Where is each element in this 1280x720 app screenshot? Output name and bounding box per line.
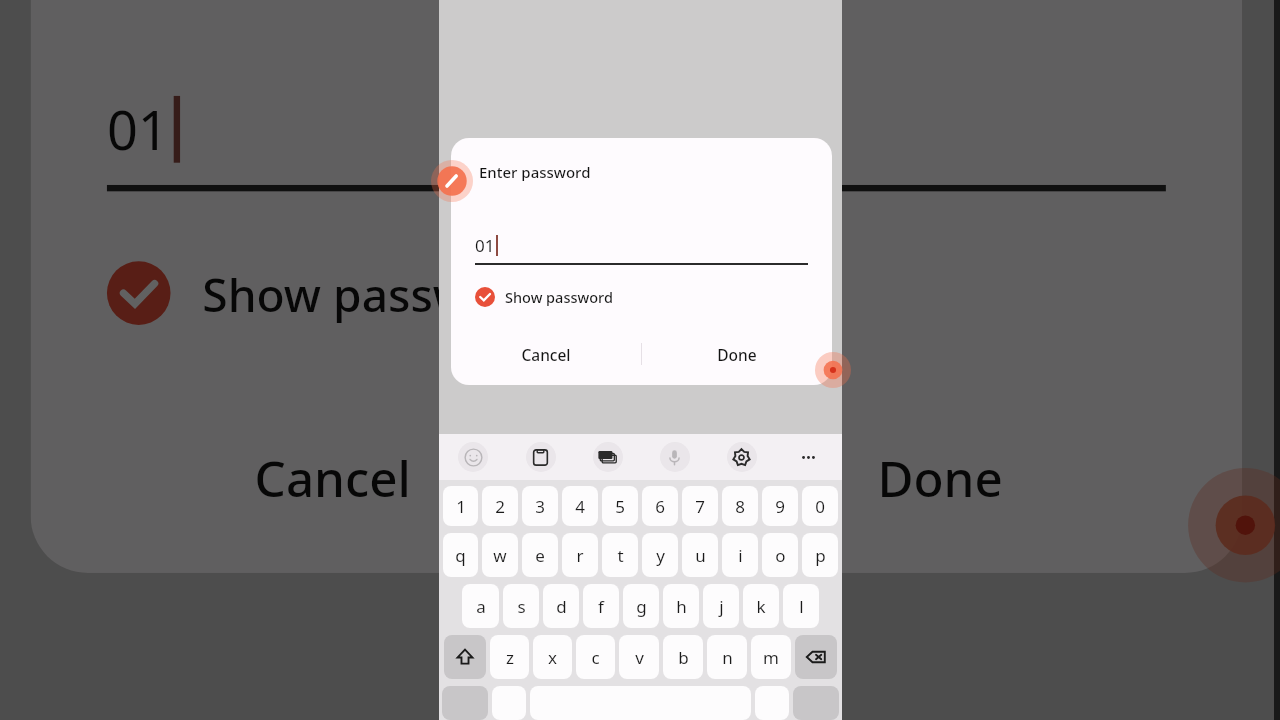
staticText: y xyxy=(656,544,665,567)
button[interactable]: h xyxy=(663,584,699,628)
button[interactable]: j xyxy=(703,584,739,628)
button[interactable]: 6 xyxy=(642,486,678,526)
button[interactable]: 01 xyxy=(107,93,1166,191)
button[interactable]: Comma xyxy=(492,686,526,720)
button[interactable]: Show password xyxy=(107,255,590,331)
button[interactable]: Symbols xyxy=(442,686,488,720)
button[interactable]: Backspace xyxy=(795,635,837,679)
staticText: i xyxy=(738,544,743,567)
button[interactable]: w xyxy=(482,533,518,577)
staticText: 4 xyxy=(575,495,585,518)
button[interactable]: Cancel xyxy=(31,388,635,560)
staticText: 2 xyxy=(495,495,505,518)
staticText: o xyxy=(775,544,786,567)
button[interactable]: a xyxy=(462,584,499,628)
staticText: a xyxy=(476,595,486,618)
button[interactable]: q xyxy=(443,533,478,577)
button[interactable]: s xyxy=(503,584,539,628)
staticText: 01 xyxy=(107,93,170,166)
button[interactable]: 01 xyxy=(475,234,808,265)
staticText: Done xyxy=(876,442,1004,509)
staticText: h xyxy=(676,595,687,618)
staticText: t xyxy=(617,544,624,567)
button[interactable]: Settings xyxy=(708,434,775,480)
button[interactable]: y xyxy=(642,533,678,577)
staticText: d xyxy=(556,595,567,618)
staticText: b xyxy=(678,646,689,669)
button[interactable]: Cancel xyxy=(451,327,641,381)
button[interactable]: b xyxy=(663,635,703,679)
staticText: j xyxy=(719,595,724,618)
staticText: n xyxy=(722,646,733,669)
button[interactable]: Voice input xyxy=(641,434,708,480)
staticText: Enter password xyxy=(479,162,591,182)
button[interactable]: x xyxy=(533,635,572,679)
button[interactable]: Emoji xyxy=(439,434,507,480)
button[interactable]: Switch keyboard xyxy=(574,434,641,480)
button[interactable]: 8 xyxy=(722,486,758,526)
button[interactable]: Done xyxy=(642,327,832,381)
button[interactable]: Clipboard xyxy=(507,434,574,480)
staticText: w xyxy=(493,544,507,567)
staticText: Show password xyxy=(202,261,546,325)
staticText: z xyxy=(506,646,514,669)
button[interactable]: Period xyxy=(755,686,789,720)
staticText: 9 xyxy=(775,495,785,518)
button[interactable]: d xyxy=(543,584,579,628)
staticText: 01 xyxy=(475,234,495,257)
staticText: e xyxy=(535,544,545,567)
staticText: 7 xyxy=(695,495,705,518)
staticText: Cancel xyxy=(253,442,412,509)
button[interactable]: 5 xyxy=(602,486,638,526)
button[interactable]: 1 xyxy=(443,486,478,526)
button[interactable]: n xyxy=(707,635,747,679)
staticText: 0 xyxy=(815,495,825,518)
button[interactable]: v xyxy=(619,635,659,679)
button[interactable]: 2 xyxy=(482,486,518,526)
button[interactable]: Done xyxy=(638,388,1242,560)
staticText: 5 xyxy=(615,495,625,518)
button[interactable]: i xyxy=(722,533,758,577)
button[interactable]: g xyxy=(623,584,659,628)
button[interactable]: 0 xyxy=(802,486,838,526)
button[interactable]: Show password xyxy=(475,285,627,309)
button[interactable]: 7 xyxy=(682,486,718,526)
button[interactable]: More options xyxy=(775,434,842,480)
staticText: 3 xyxy=(535,495,545,518)
staticText: k xyxy=(756,595,766,618)
button[interactable]: o xyxy=(762,533,798,577)
button[interactable]: 3 xyxy=(522,486,558,526)
button[interactable]: r xyxy=(562,533,598,577)
staticText: x xyxy=(548,646,557,669)
button[interactable]: k xyxy=(743,584,779,628)
staticText: m xyxy=(763,646,779,669)
staticText: r xyxy=(576,544,584,567)
button[interactable]: 9 xyxy=(762,486,798,526)
staticText: s xyxy=(517,595,526,618)
button[interactable]: 4 xyxy=(562,486,598,526)
button[interactable]: m xyxy=(751,635,791,679)
button[interactable]: Enter xyxy=(793,686,839,720)
button[interactable]: u xyxy=(682,533,718,577)
staticText: p xyxy=(815,544,826,567)
staticText: Cancel xyxy=(521,344,571,365)
staticText: l xyxy=(799,595,804,618)
button[interactable]: z xyxy=(490,635,529,679)
button[interactable]: t xyxy=(602,533,638,577)
button[interactable]: l xyxy=(783,584,819,628)
button[interactable]: e xyxy=(522,533,558,577)
staticText: c xyxy=(591,646,600,669)
staticText: q xyxy=(455,544,466,567)
staticText: Done xyxy=(717,344,757,365)
staticText: 1 xyxy=(456,495,466,518)
staticText: u xyxy=(695,544,706,567)
button[interactable]: f xyxy=(583,584,619,628)
staticText: v xyxy=(635,646,644,669)
button[interactable]: p xyxy=(802,533,838,577)
button[interactable]: Shift xyxy=(444,635,486,679)
staticText: 6 xyxy=(655,495,665,518)
button[interactable]: c xyxy=(576,635,615,679)
staticText: f xyxy=(598,595,604,618)
staticText: Show password xyxy=(505,287,613,307)
